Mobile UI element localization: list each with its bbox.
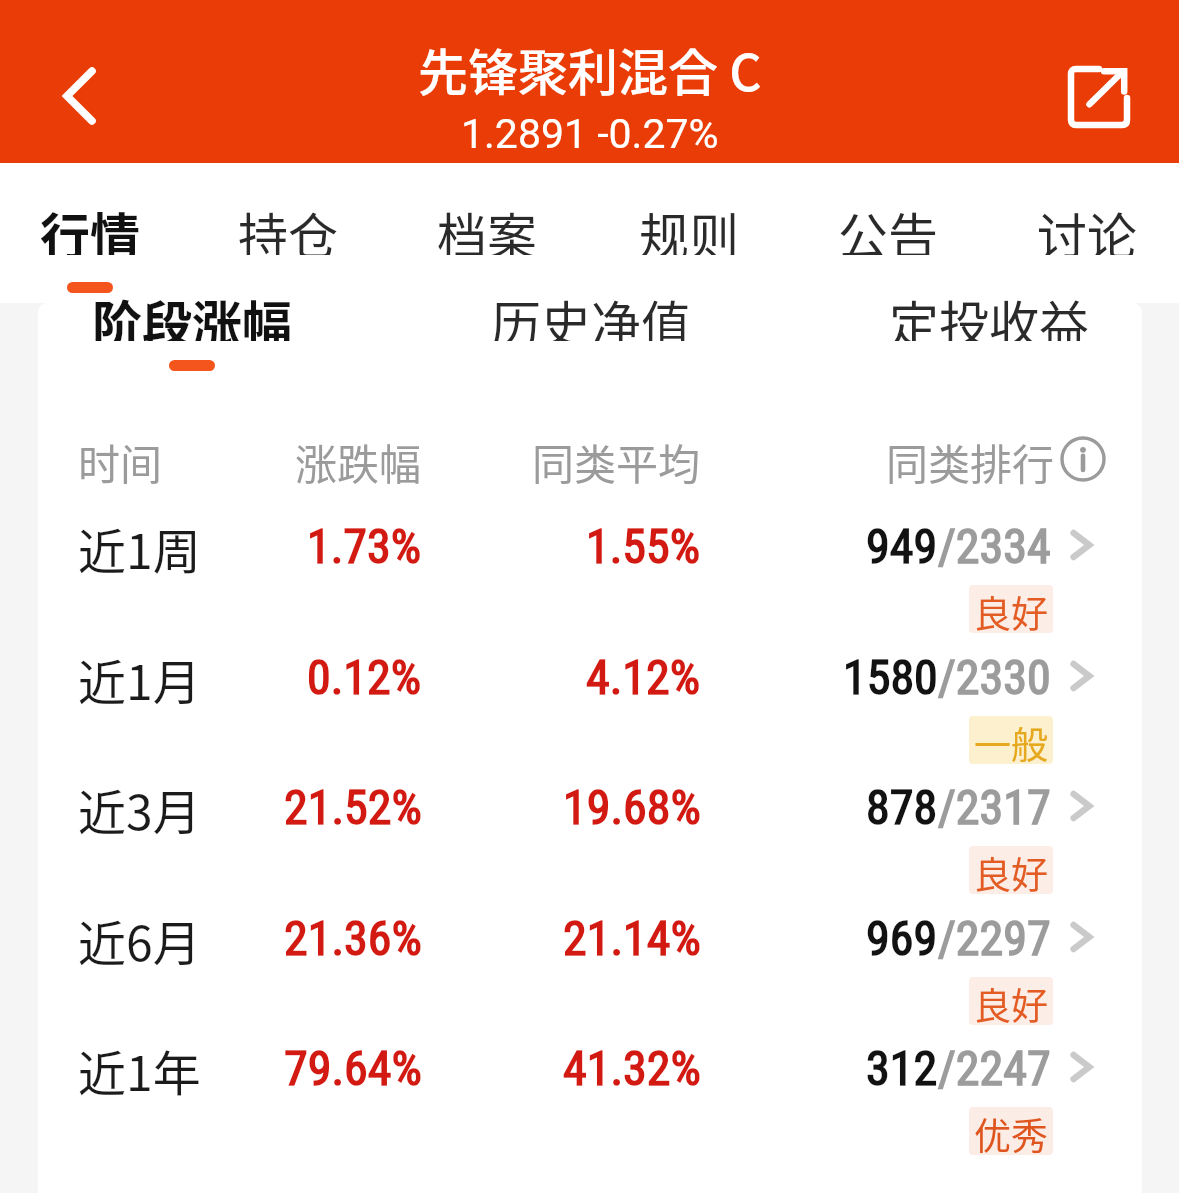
staticText: 一般 (974, 716, 1048, 764)
staticText: 档案 (437, 197, 537, 255)
staticText: 21.52% (284, 779, 422, 835)
button[interactable] (0, 612, 1179, 742)
staticText: 21.14% (563, 910, 701, 966)
staticText: 79.64% (284, 1040, 422, 1096)
button[interactable]: 档案 (407, 191, 567, 309)
staticText: 定投收益 (889, 285, 1089, 341)
staticText: 4.12% (586, 649, 701, 705)
staticText: 讨论 (1037, 197, 1137, 255)
button[interactable]: 定投收益 (849, 282, 1129, 372)
button[interactable]: 公告 (808, 191, 968, 309)
button[interactable] (0, 742, 1179, 872)
button[interactable]: Back (36, 53, 122, 139)
staticText: /2317 (938, 779, 1051, 835)
button[interactable] (0, 481, 1179, 611)
staticText: 规则 (639, 197, 739, 255)
button[interactable] (0, 873, 1179, 1003)
button[interactable] (0, 1003, 1179, 1133)
staticText: 时间 (78, 431, 163, 487)
staticText: /2297 (938, 910, 1051, 966)
staticText: 行情 (40, 197, 140, 255)
staticText: 阶段涨幅 (92, 285, 292, 341)
staticText: /2247 (938, 1040, 1051, 1096)
staticText: 312 (866, 1040, 938, 1096)
staticText: 1.55% (586, 518, 701, 574)
staticText: 1580 (843, 649, 938, 705)
staticText: 近6月 (78, 905, 201, 971)
staticText: 878 (866, 779, 938, 835)
staticText: 良好 (974, 585, 1048, 633)
staticText: 同类平均 (532, 431, 701, 487)
staticText: 持仓 (238, 197, 338, 255)
staticText: /2334 (938, 518, 1051, 574)
staticText: 近1月 (78, 644, 201, 710)
staticText: /2330 (938, 649, 1051, 705)
staticText: 良好 (974, 977, 1048, 1025)
staticText: 历史净值 (491, 285, 691, 341)
button[interactable]: About peer ranking (1060, 436, 1106, 482)
button[interactable]: 历史净值 (451, 282, 731, 372)
staticText: 良好 (974, 846, 1048, 894)
staticText: 969 (866, 910, 938, 966)
button[interactable]: 持仓 (208, 191, 368, 309)
staticText: 1.2891 -0.27% (461, 110, 719, 158)
staticText: 优秀 (974, 1107, 1048, 1155)
staticText: 1.73% (307, 518, 422, 574)
button[interactable]: 讨论 (1007, 191, 1167, 309)
staticText: 近1周 (78, 513, 201, 579)
staticText: 涨跌幅 (295, 431, 422, 487)
button[interactable]: 规则 (609, 191, 769, 309)
staticText: 先锋聚利混合 C (418, 33, 762, 105)
staticText: 同类排行 (886, 431, 1055, 487)
button[interactable]: Share (1056, 54, 1142, 140)
staticText: 近3月 (78, 774, 201, 840)
staticText: 949 (866, 518, 938, 574)
staticText: 41.32% (563, 1040, 701, 1096)
staticText: 0.12% (307, 649, 422, 705)
staticText: 公告 (838, 197, 938, 255)
staticText: 近1年 (78, 1035, 201, 1101)
button[interactable]: 行情 (10, 191, 170, 309)
staticText: 21.36% (284, 910, 422, 966)
staticText: 19.68% (563, 779, 701, 835)
button[interactable]: 阶段涨幅 (52, 282, 332, 372)
